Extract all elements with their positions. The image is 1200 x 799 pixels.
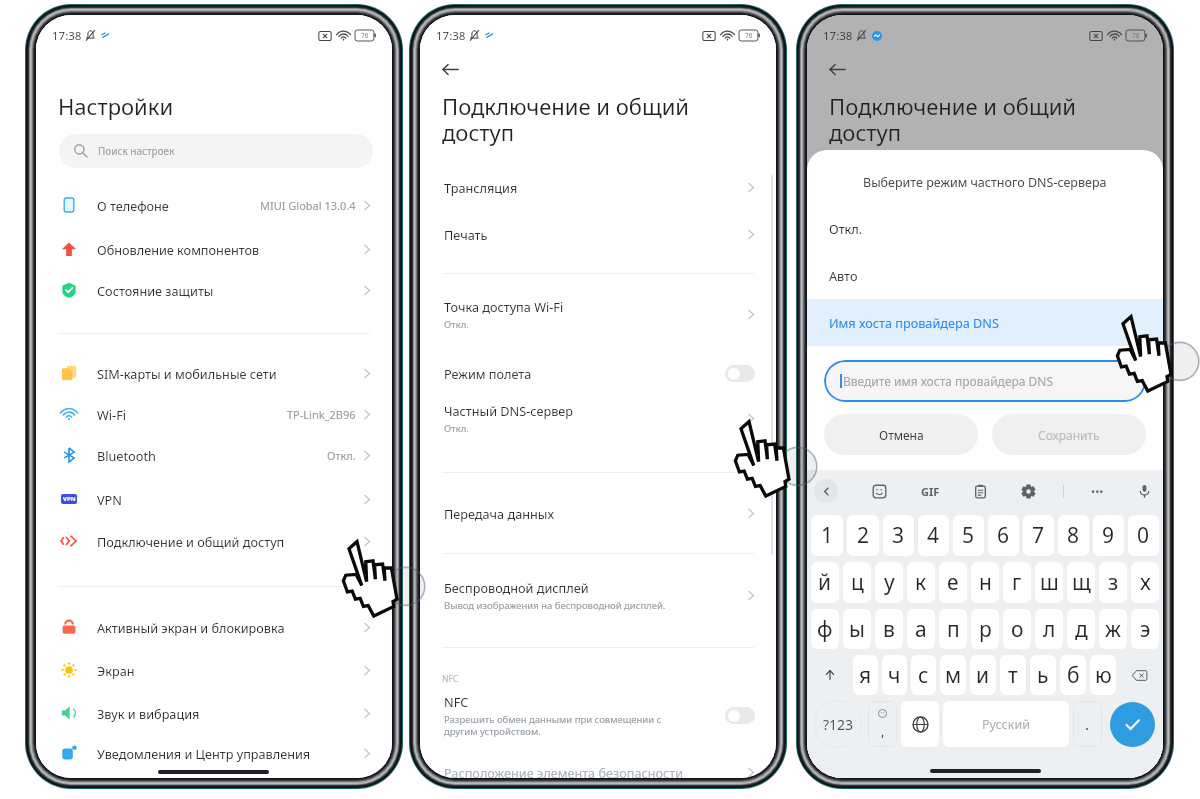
button[interactable]: т bbox=[1000, 655, 1026, 695]
button[interactable] bbox=[811, 655, 849, 695]
button[interactable]: Bluetooth bbox=[36, 434, 392, 476]
button[interactable]: щ bbox=[1067, 562, 1095, 603]
staticText: о bbox=[1011, 615, 1024, 644]
button[interactable]: Voice input bbox=[1137, 484, 1152, 499]
button[interactable]: я bbox=[853, 655, 878, 695]
button[interactable]: Имя хоста провайдера DNS bbox=[807, 299, 1163, 346]
button[interactable]: Обновление компонентов bbox=[36, 228, 392, 270]
button[interactable]: г bbox=[1003, 562, 1031, 603]
button[interactable]: Уведомления и Центр управления bbox=[36, 732, 392, 774]
button[interactable]: VPN bbox=[36, 478, 392, 520]
button[interactable]: NFC bbox=[420, 690, 776, 740]
button[interactable]: Трансляция bbox=[420, 166, 776, 208]
button[interactable]: Stickers bbox=[872, 484, 887, 499]
button[interactable]: с bbox=[911, 655, 936, 695]
button[interactable]: ь bbox=[1030, 655, 1056, 695]
staticText: NFC bbox=[444, 693, 469, 710]
staticText: ?123 bbox=[823, 715, 854, 734]
staticText: Обновление компонентов bbox=[97, 241, 260, 258]
button[interactable]: в bbox=[875, 609, 903, 649]
staticText: Выберите режим частного DNS-сервера bbox=[863, 174, 1107, 191]
staticText: Печать bbox=[444, 226, 488, 243]
button[interactable]: 1 bbox=[811, 515, 843, 556]
button[interactable]: ю bbox=[1090, 655, 1116, 695]
button[interactable]: Режим полета bbox=[420, 352, 776, 394]
button[interactable]: 9 bbox=[1093, 515, 1124, 556]
button[interactable]: ?123 bbox=[814, 700, 862, 748]
button[interactable]: Поиск настроек bbox=[59, 134, 373, 168]
staticText: Уведомления и Центр управления bbox=[97, 745, 311, 762]
button[interactable]: м bbox=[940, 655, 966, 695]
button[interactable]: Отмена bbox=[824, 414, 978, 455]
button[interactable]: н bbox=[971, 562, 999, 603]
staticText: л bbox=[1043, 615, 1056, 644]
button[interactable]: SIM-карты и мобильные сети bbox=[36, 352, 392, 394]
button[interactable]: р bbox=[971, 609, 999, 649]
button[interactable]: . bbox=[1073, 701, 1102, 747]
button[interactable]: к bbox=[907, 562, 935, 603]
button[interactable]: й bbox=[811, 562, 839, 603]
staticText: Подключение и общий доступ bbox=[442, 91, 690, 147]
button[interactable]: Wi-Fi bbox=[36, 393, 392, 435]
button[interactable]: Печать bbox=[420, 213, 776, 255]
button[interactable]: Русский bbox=[943, 701, 1069, 747]
staticText: 9 bbox=[1102, 521, 1115, 550]
button[interactable]: 3 bbox=[883, 515, 914, 556]
button[interactable]: Расположение элемента безопасности bbox=[420, 751, 776, 778]
button[interactable]: ш bbox=[1035, 562, 1063, 603]
button[interactable]: Звук и вибрация bbox=[36, 692, 392, 734]
button[interactable]: и bbox=[970, 655, 996, 695]
button[interactable]: з bbox=[1099, 562, 1127, 603]
button[interactable]: Back bbox=[436, 55, 464, 83]
button[interactable]: Активный экран и блокировка bbox=[36, 606, 392, 648]
button[interactable]: Сохранить bbox=[992, 414, 1146, 455]
button[interactable]: д bbox=[1067, 609, 1095, 649]
button[interactable]: п bbox=[939, 609, 967, 649]
button[interactable]: Подключение и общий доступ bbox=[36, 520, 392, 562]
staticText: 17:38 bbox=[436, 28, 466, 44]
button[interactable]: Передача данных bbox=[420, 492, 776, 534]
button[interactable]: ы bbox=[843, 609, 871, 649]
button[interactable]: 7 bbox=[1023, 515, 1054, 556]
button[interactable]: ж bbox=[1099, 609, 1127, 649]
button[interactable]: б bbox=[1060, 655, 1086, 695]
button[interactable]: Enter bbox=[1110, 702, 1155, 747]
button[interactable]: ф bbox=[811, 609, 839, 649]
button[interactable]: 5 bbox=[953, 515, 984, 556]
button[interactable]: о bbox=[1003, 609, 1031, 649]
button[interactable]: Введите имя хоста провайдера DNS bbox=[824, 360, 1146, 402]
button[interactable]: , bbox=[868, 701, 897, 747]
button[interactable]: Экран bbox=[36, 649, 392, 691]
button[interactable]: О телефоне bbox=[36, 184, 392, 226]
button[interactable]: Clipboard bbox=[973, 484, 988, 499]
button[interactable]: у bbox=[875, 562, 903, 603]
button[interactable]: Settings bbox=[1021, 484, 1036, 499]
staticText: щ bbox=[1072, 568, 1091, 597]
staticText: VPN bbox=[97, 491, 122, 508]
button[interactable]: х bbox=[1131, 562, 1159, 603]
button[interactable]: Режим полета bbox=[725, 365, 755, 382]
staticText: Русский bbox=[982, 716, 1030, 733]
button[interactable]: 0 bbox=[1128, 515, 1159, 556]
button[interactable] bbox=[901, 701, 939, 747]
button[interactable]: э bbox=[1131, 609, 1159, 649]
button[interactable]: е bbox=[939, 562, 967, 603]
button[interactable]: 2 bbox=[847, 515, 879, 556]
button[interactable]: ч bbox=[882, 655, 907, 695]
staticText: Активный экран и блокировка bbox=[97, 619, 285, 636]
button[interactable]: 4 bbox=[918, 515, 949, 556]
button[interactable]: Точка доступа Wi-Fi bbox=[420, 290, 776, 338]
button[interactable]: NFC bbox=[725, 707, 755, 724]
button[interactable]: Авто bbox=[807, 252, 1163, 299]
button[interactable]: 8 bbox=[1058, 515, 1089, 556]
button[interactable] bbox=[1120, 655, 1159, 695]
button[interactable]: Back bbox=[814, 479, 838, 503]
button[interactable]: Откл. bbox=[807, 205, 1163, 252]
button[interactable]: Состояние защиты bbox=[36, 269, 392, 311]
button[interactable]: Частный DNS-сервер bbox=[420, 394, 776, 442]
button[interactable]: Беспроводной дисплей bbox=[420, 571, 776, 619]
button[interactable]: ц bbox=[843, 562, 871, 603]
button[interactable]: л bbox=[1035, 609, 1063, 649]
button[interactable]: а bbox=[907, 609, 935, 649]
button[interactable]: 6 bbox=[988, 515, 1019, 556]
